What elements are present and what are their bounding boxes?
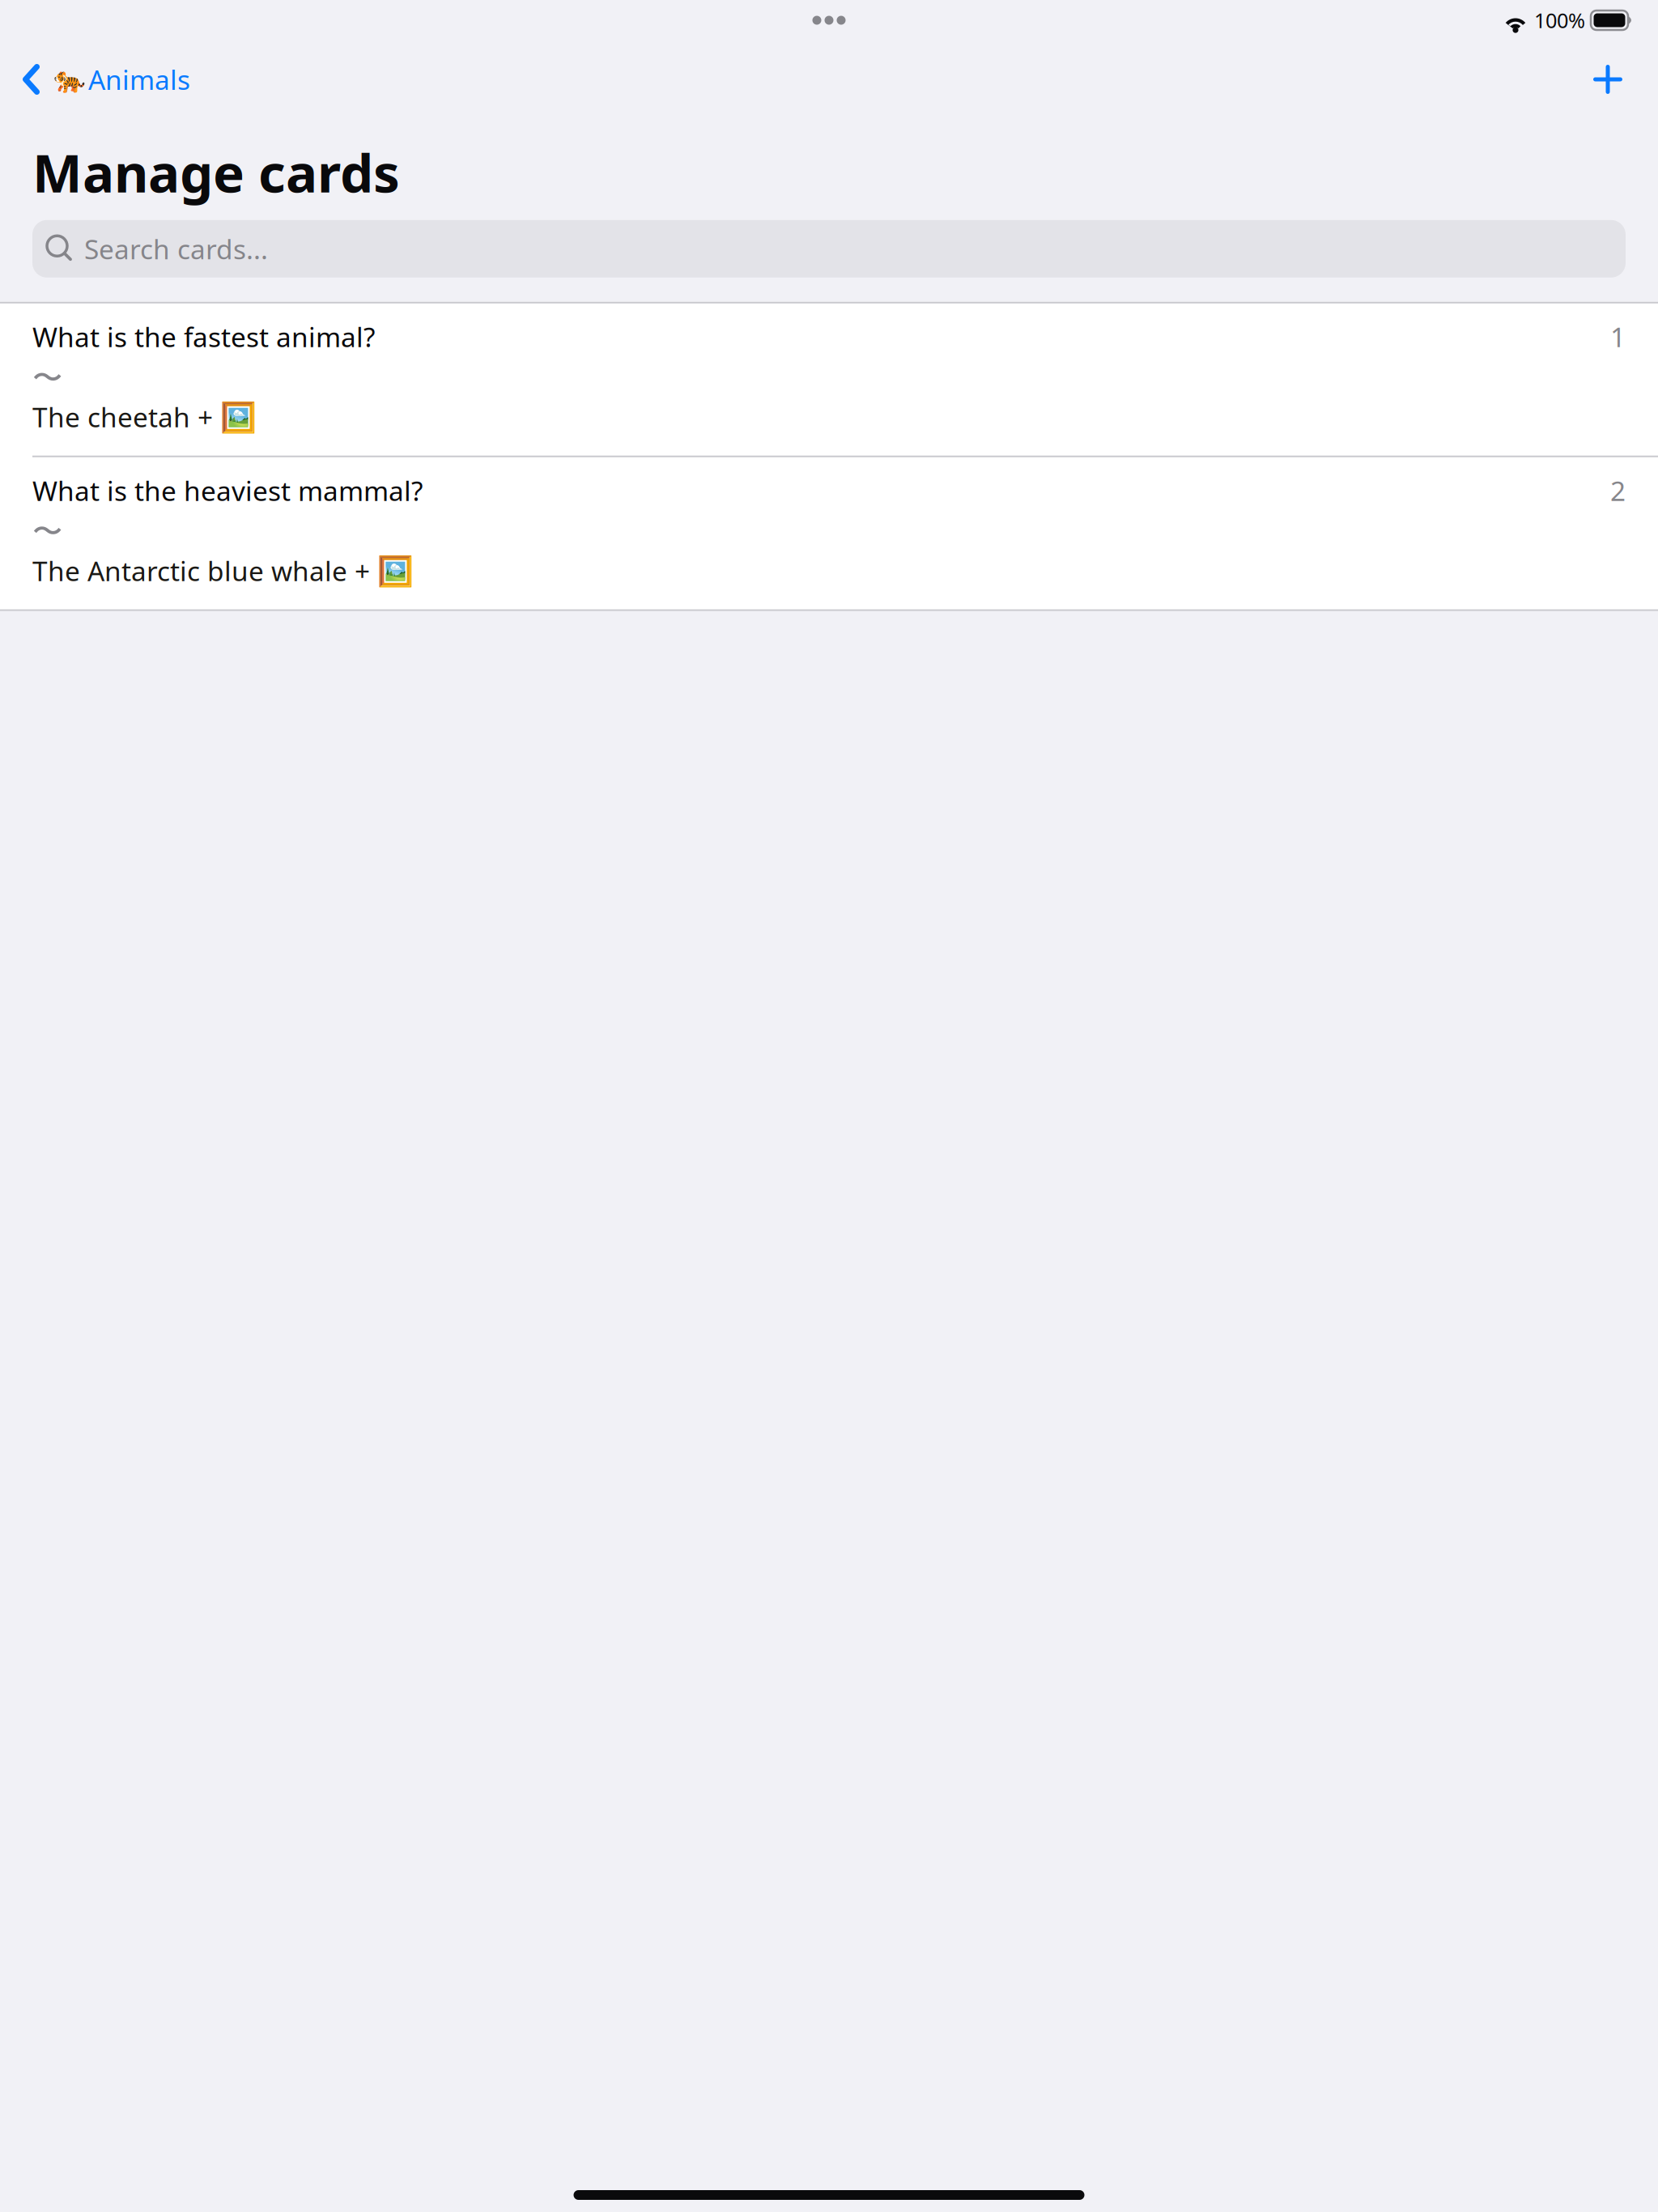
staticText: 2 — [1610, 473, 1626, 508]
staticText: The Antarctic blue whale + 🖼️ — [32, 550, 414, 589]
staticText: Manage cards — [32, 137, 400, 207]
staticText: What is the fastest animal? — [32, 319, 375, 355]
staticText: 〜 — [32, 513, 62, 550]
button[interactable]: What is the fastest animal? — [0, 303, 1658, 456]
staticText: 1 — [1610, 319, 1626, 355]
button[interactable]: What is the heaviest mammal? — [0, 457, 1658, 609]
staticText: 100% — [1534, 7, 1585, 34]
staticText: 〜 — [32, 359, 62, 397]
staticText: The cheetah + 🖼️ — [32, 397, 257, 435]
staticText: 🐅 — [53, 65, 86, 94]
staticText: Search cards... — [84, 231, 268, 267]
staticText: What is the heaviest mammal? — [32, 473, 423, 508]
staticText: Animals — [88, 61, 190, 97]
button[interactable]: Back to Animals — [0, 52, 205, 107]
button[interactable]: Search cards... — [32, 220, 1626, 278]
button[interactable]: Add card — [1575, 49, 1641, 109]
